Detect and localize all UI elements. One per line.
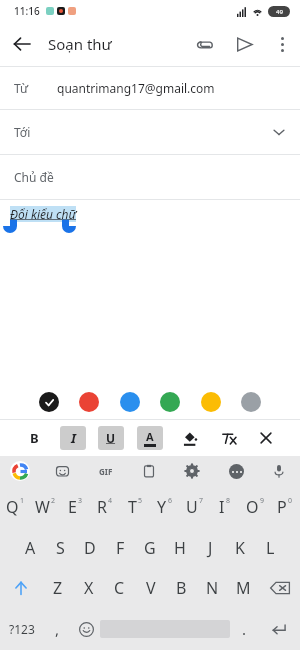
staticText: , (55, 619, 60, 639)
button[interactable]: Underline (98, 426, 124, 450)
button[interactable]: Yellow (201, 392, 221, 412)
staticText: C (114, 577, 125, 599)
button[interactable]: I (210, 486, 240, 528)
button[interactable]: Green (160, 392, 180, 412)
button[interactable]: ?123 (0, 608, 43, 650)
staticText: Z (53, 577, 63, 599)
staticText: 11:16 (14, 4, 40, 18)
button[interactable]: Q (0, 486, 30, 528)
button[interactable]: E (60, 486, 90, 528)
staticText: quantrimang17@gmail.com (57, 80, 215, 96)
button[interactable]: Bold (21, 426, 47, 450)
button[interactable]: Black (39, 392, 59, 412)
button[interactable]: Clipboard (138, 460, 160, 482)
staticText: 7 (199, 496, 204, 506)
staticText: F (116, 537, 125, 559)
button[interactable]: D (75, 528, 105, 568)
button[interactable]: W (30, 486, 60, 528)
staticText: Soạn thư (48, 34, 112, 54)
staticText: E (68, 496, 77, 518)
button[interactable]: Attach file (184, 24, 224, 64)
button[interactable]: R (90, 486, 120, 528)
staticText: G (144, 537, 156, 559)
staticText: Từ (14, 80, 29, 96)
button[interactable]: Text color (137, 426, 163, 450)
button[interactable]: Clear formatting (215, 426, 241, 450)
button[interactable]: X (73, 568, 104, 608)
button[interactable]: U (180, 486, 210, 528)
staticText: B (176, 577, 187, 599)
button[interactable]: S (45, 528, 75, 568)
button[interactable]: B (166, 568, 197, 608)
staticText: R (97, 496, 107, 518)
button[interactable]: N (197, 568, 228, 608)
staticText: L (266, 537, 275, 559)
button[interactable]: Highlight color (176, 426, 202, 450)
staticText: I (71, 429, 76, 447)
staticText: . (242, 619, 247, 639)
staticText: U (186, 496, 198, 518)
staticText: 1 (20, 496, 25, 506)
button[interactable]: Tới (0, 110, 300, 154)
button[interactable]: F (105, 528, 135, 568)
staticText: 8 (226, 496, 231, 506)
button[interactable]: G (135, 528, 165, 568)
staticText: B (30, 429, 39, 447)
button[interactable]: Voice input (268, 460, 290, 482)
button[interactable]: GIF (95, 460, 117, 482)
staticText: 9 (260, 496, 265, 506)
button[interactable]: Shift (0, 568, 42, 608)
button[interactable]: A (15, 528, 45, 568)
button[interactable]: P (270, 486, 300, 528)
button[interactable]: More (225, 460, 247, 482)
staticText: Q (6, 496, 19, 518)
staticText: N (206, 577, 219, 599)
button[interactable]: Từ (0, 67, 300, 109)
button[interactable]: Enter (258, 608, 300, 650)
button[interactable]: Y (150, 486, 180, 528)
button[interactable]: T (120, 486, 150, 528)
staticText: X (84, 577, 94, 599)
button[interactable]: Gray (241, 392, 261, 412)
button[interactable]: Z (42, 568, 73, 608)
staticText: Chủ đề (14, 169, 54, 185)
button[interactable]: Chủ đề (0, 155, 300, 199)
staticText: 4 (108, 496, 113, 506)
button[interactable]: Google (10, 461, 30, 481)
button[interactable]: O (240, 486, 270, 528)
staticText: O (246, 496, 259, 518)
staticText: 3 (78, 496, 83, 506)
button[interactable]: Back (0, 22, 44, 66)
button[interactable]: Italic (60, 426, 86, 450)
staticText: V (146, 577, 156, 599)
button[interactable]: More options (264, 26, 300, 62)
staticText: 2 (51, 496, 56, 506)
button[interactable]: M (228, 568, 259, 608)
button[interactable]: Settings (181, 460, 203, 482)
button[interactable]: L (255, 528, 285, 568)
staticText: H (174, 537, 186, 559)
staticText: Tới (14, 124, 31, 140)
staticText: S (56, 537, 65, 559)
staticText: 6 (168, 496, 173, 506)
button[interactable]: J (195, 528, 225, 568)
button[interactable]: Close (253, 426, 279, 450)
staticText: I (219, 496, 225, 518)
button[interactable]: Emoji (72, 608, 100, 650)
button[interactable]: C (104, 568, 135, 608)
staticText: A (25, 537, 36, 559)
button[interactable]: Blue (120, 392, 140, 412)
button[interactable]: Red (79, 392, 99, 412)
button[interactable]: Backspace (259, 568, 300, 608)
button[interactable]: K (225, 528, 255, 568)
button[interactable]: H (165, 528, 195, 568)
button[interactable]: Đổi kiểu chữ (0, 200, 300, 246)
button[interactable]: , (43, 608, 72, 650)
button[interactable]: Send (224, 24, 264, 64)
button[interactable]: Stickers (51, 460, 73, 482)
button[interactable]: . (230, 608, 258, 650)
staticText: T (128, 496, 137, 518)
button[interactable]: V (135, 568, 166, 608)
staticText: U (106, 430, 116, 446)
